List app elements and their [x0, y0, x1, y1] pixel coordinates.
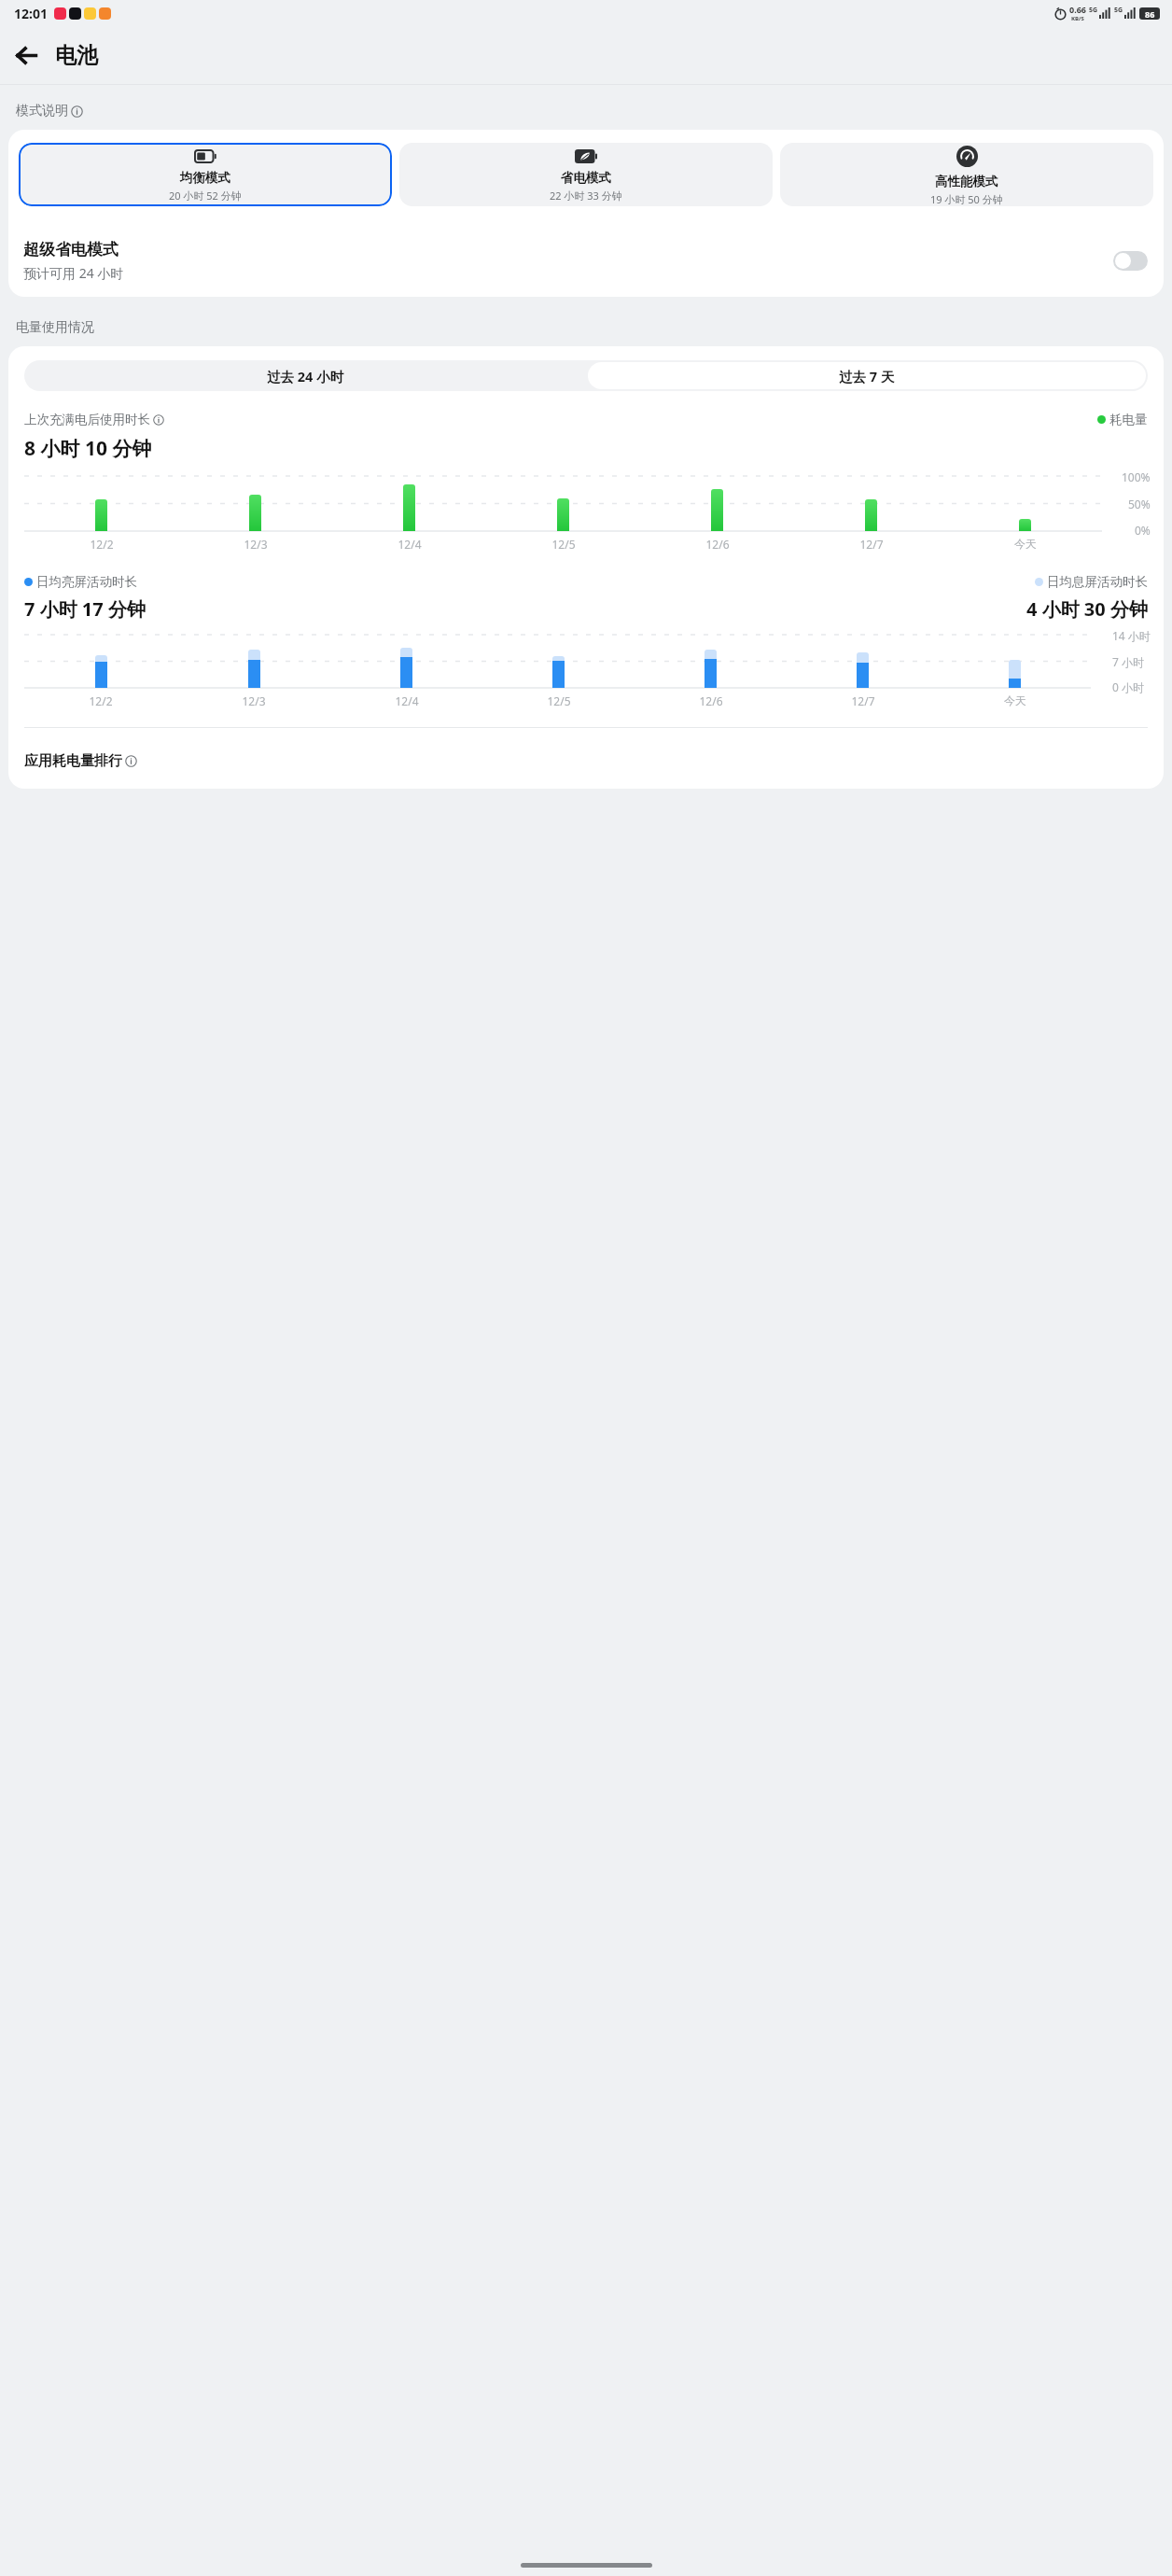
staticText: 省电模式	[561, 170, 611, 186]
button[interactable]: 省电模式	[399, 143, 773, 206]
staticText: 均衡模式	[180, 170, 230, 186]
staticText: 上次充满电后使用时长	[24, 412, 150, 427]
staticText: 12/6	[699, 693, 723, 708]
staticText: 12/2	[90, 537, 114, 552]
staticText: 高性能模式	[935, 174, 998, 189]
staticText: 日均亮屏活动时长	[36, 574, 137, 590]
staticText: 0.66	[1069, 4, 1086, 15]
staticText: 12/3	[242, 693, 266, 708]
staticText: 0 小时	[1112, 679, 1144, 694]
staticText: 12/5	[551, 537, 576, 552]
staticText: 12/7	[859, 537, 884, 552]
button[interactable]: Super power saving toggle	[1113, 251, 1148, 271]
staticText: 86	[1145, 8, 1155, 20]
staticText: 12/6	[705, 537, 730, 552]
staticText: 8 小时 10 分钟	[24, 435, 152, 462]
staticText: 19 小时 50 分钟	[930, 192, 1003, 206]
staticText: 4 小时 30 分钟	[1026, 596, 1148, 622]
staticText: 模式说明	[16, 103, 68, 119]
staticText: 0%	[1135, 523, 1151, 538]
staticText: 12:01	[14, 5, 48, 22]
staticText: 预计可用 24 小时	[23, 264, 124, 282]
staticText: 5G	[1114, 6, 1123, 15]
staticText: 电量使用情况	[16, 319, 94, 336]
staticText: 7 小时	[1112, 654, 1144, 669]
staticText: 50%	[1128, 497, 1151, 511]
button[interactable]: 均衡模式	[19, 143, 392, 206]
staticText: 超级省电模式	[23, 240, 119, 259]
staticText: 7 小时 17 分钟	[24, 596, 146, 622]
staticText: 日均息屏活动时长	[1047, 574, 1148, 590]
staticText: 过去 7 天	[839, 367, 895, 385]
staticText: 12/3	[244, 537, 268, 552]
staticText: 应用耗电量排行	[24, 752, 122, 770]
staticText: 今天	[1004, 693, 1026, 707]
staticText: 过去 24 小时	[267, 367, 344, 385]
staticText: 12/7	[851, 693, 875, 708]
staticText: 12/4	[395, 693, 419, 708]
staticText: 22 小时 33 分钟	[550, 189, 622, 203]
staticText: 100%	[1122, 469, 1151, 484]
button[interactable]: Back	[6, 35, 47, 76]
button[interactable]: 过去 7 天	[588, 362, 1146, 389]
staticText: 12/4	[398, 537, 422, 552]
staticText: 今天	[1014, 537, 1037, 551]
staticText: 电池	[55, 42, 98, 69]
staticText: 20 小时 52 分钟	[169, 189, 242, 203]
button[interactable]: 超级省电模式	[19, 224, 1153, 297]
staticText: 12/2	[89, 693, 113, 708]
staticText: KB/S	[1071, 15, 1084, 22]
staticText: 14 小时	[1112, 628, 1151, 643]
button[interactable]: 高性能模式	[780, 143, 1153, 206]
staticText: 耗电量	[1109, 412, 1148, 427]
staticText: 5G	[1089, 6, 1098, 15]
staticText: 12/5	[547, 693, 571, 708]
button[interactable]: 过去 24 小时	[24, 360, 586, 391]
